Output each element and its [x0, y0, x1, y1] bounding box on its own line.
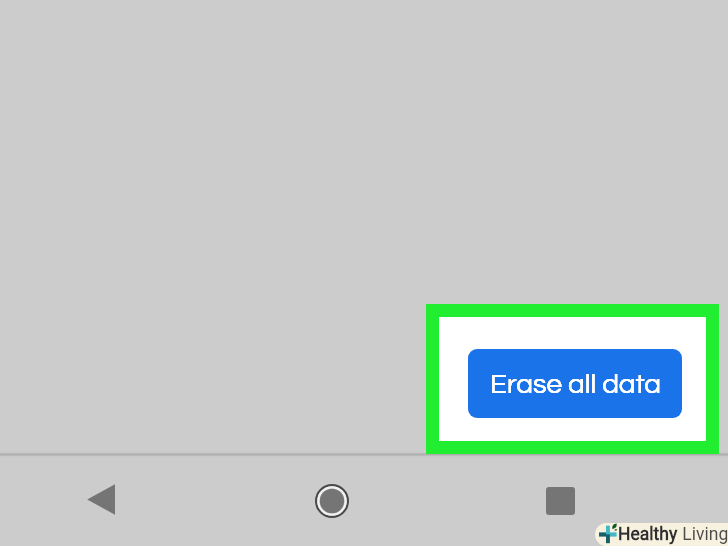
staticText: Healthy	[618, 524, 678, 545]
button[interactable]: Home	[287, 455, 377, 546]
button[interactable]: Back	[56, 455, 146, 546]
button[interactable]: Erase all data	[468, 349, 682, 418]
staticText: Living	[678, 524, 728, 545]
staticText: Erase all data	[490, 370, 661, 399]
staticText: Erase all data	[490, 370, 661, 399]
button[interactable]: Recent apps	[515, 455, 605, 546]
